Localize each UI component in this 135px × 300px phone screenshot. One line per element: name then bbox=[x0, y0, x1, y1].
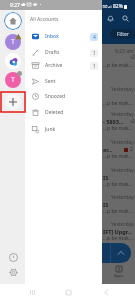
button[interactable]: Compose bbox=[92, 243, 131, 263]
staticText: Yesterday bbox=[111, 221, 134, 228]
staticText: 1 bbox=[93, 63, 96, 70]
staticText: 9:27 bbox=[10, 2, 20, 9]
staticText: All Accounts bbox=[30, 16, 59, 23]
button[interactable]: Search bbox=[120, 13, 131, 24]
button[interactable]: Drafts bbox=[25, 45, 102, 60]
button[interactable]: Yesterday bbox=[103, 194, 134, 221]
staticText: 2 bbox=[130, 146, 133, 153]
button[interactable]: Yesterday bbox=[103, 111, 134, 138]
staticText: Yesterday bbox=[111, 194, 134, 201]
button[interactable]: Outlook account bbox=[5, 53, 21, 69]
button[interactable]: Yesterday bbox=[103, 139, 134, 166]
staticText: T bbox=[11, 75, 15, 85]
button[interactable]: Add account bbox=[5, 94, 21, 110]
button[interactable]: Inbox bbox=[25, 29, 102, 44]
button[interactable]: Yesterday bbox=[103, 167, 134, 194]
button[interactable]: Junk bbox=[25, 122, 102, 137]
staticText: ...p be mak... bbox=[103, 235, 133, 242]
staticText: Yesterday bbox=[111, 86, 134, 93]
button[interactable]: Notifications bbox=[105, 13, 116, 24]
button[interactable]: Snoozed bbox=[25, 89, 102, 104]
staticText: Drafts bbox=[45, 49, 60, 56]
staticText: - 5803... bbox=[103, 118, 124, 125]
staticText: ...p be mak... bbox=[103, 153, 133, 160]
button[interactable]: Home bbox=[59, 284, 77, 300]
staticText: er... bbox=[103, 146, 113, 153]
button[interactable]: Deleted bbox=[25, 105, 102, 120]
staticText: ...p be mak... bbox=[103, 62, 133, 69]
staticText: ...p be mak... bbox=[103, 100, 133, 107]
staticText: Apps bbox=[114, 273, 124, 278]
staticText: IS Numbe... bbox=[103, 201, 134, 208]
button[interactable]: Settings bbox=[5, 264, 21, 280]
button[interactable]: Help bbox=[5, 249, 21, 265]
button[interactable]: Account T pink bbox=[5, 72, 21, 88]
button[interactable]: Yesterday bbox=[103, 86, 134, 113]
staticText: IS Numbe... bbox=[103, 174, 134, 181]
staticText: ...p be mak... bbox=[103, 181, 133, 188]
staticText: Yesterday bbox=[111, 167, 134, 174]
staticText: Yesterday bbox=[111, 139, 134, 146]
button[interactable]: Back bbox=[97, 284, 115, 300]
staticText: 4 bbox=[93, 34, 96, 41]
staticText: Snoozed bbox=[45, 93, 66, 100]
staticText: Yesterday bbox=[111, 111, 134, 118]
staticText: IFT] Upgr... bbox=[103, 228, 132, 235]
staticText: Inbox bbox=[45, 33, 59, 40]
button[interactable]: Archive bbox=[25, 58, 102, 73]
staticText: Deleted bbox=[45, 109, 64, 116]
button[interactable]: Recents bbox=[23, 284, 41, 300]
button[interactable]: Yesterday bbox=[103, 221, 134, 248]
button[interactable]: Account T purple bbox=[5, 34, 21, 50]
staticText: ...p be mak... bbox=[103, 125, 133, 132]
staticText: 82% bbox=[113, 3, 123, 10]
staticText: Filter bbox=[117, 31, 129, 38]
staticText: T bbox=[11, 37, 15, 47]
staticText: ...p be mak... bbox=[103, 208, 133, 215]
staticText: Sent bbox=[45, 78, 56, 85]
button[interactable]: 9:23 am bbox=[103, 48, 134, 75]
button[interactable]: Sent bbox=[25, 74, 102, 89]
staticText: Junk bbox=[45, 126, 56, 133]
staticText: 9:23 am bbox=[115, 48, 134, 55]
staticText: 1 bbox=[93, 50, 96, 57]
staticText: Archive bbox=[45, 62, 63, 69]
button[interactable]: Filter bbox=[110, 29, 135, 39]
button[interactable]: Apps bbox=[112, 266, 126, 282]
button[interactable]: All accounts bbox=[4, 12, 22, 30]
